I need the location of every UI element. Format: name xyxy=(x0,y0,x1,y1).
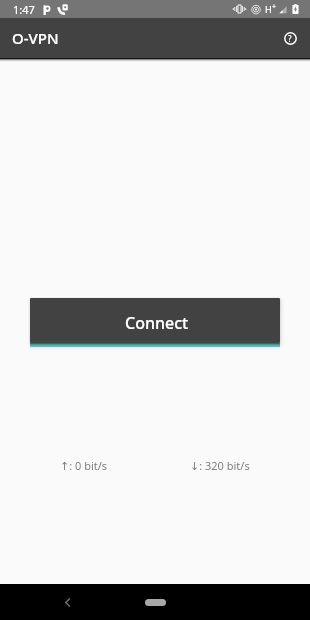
staticText: H xyxy=(265,3,272,15)
button[interactable]: Connect xyxy=(30,298,280,343)
button[interactable]: Back xyxy=(55,590,79,614)
staticText: O-VPN xyxy=(12,28,59,48)
staticText: ? xyxy=(288,33,292,44)
button[interactable]: Help xyxy=(277,25,303,51)
staticText: Connect xyxy=(125,312,189,334)
staticText: 1:47 xyxy=(13,2,35,17)
staticText: ↑: 0 bit/s xyxy=(60,458,108,473)
staticText: ↓: 320 bit/s xyxy=(190,458,250,473)
staticText: + xyxy=(272,2,277,12)
button[interactable]: Home xyxy=(145,599,166,606)
